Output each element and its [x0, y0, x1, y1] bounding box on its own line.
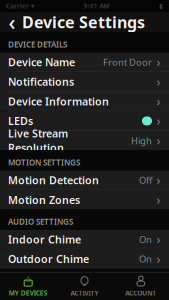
staticText: High	[131, 134, 152, 147]
staticText: △	[26, 274, 31, 282]
staticText: ACCOUNT	[125, 289, 156, 297]
staticText: ‹	[8, 8, 15, 36]
staticText: Device Information	[8, 94, 109, 108]
staticText: ›	[156, 172, 160, 188]
button[interactable]: Back	[6, 12, 18, 32]
staticText: Device Settings	[22, 11, 145, 33]
button[interactable]: LEDs	[0, 111, 169, 131]
staticText: ›	[156, 113, 160, 129]
staticText: ▮	[159, 2, 163, 10]
button[interactable]: Device Name	[0, 53, 169, 72]
staticText: MY DEVICES	[9, 289, 48, 297]
staticText: Outdoor Chime	[8, 252, 89, 266]
button[interactable]: Outdoor Chime	[0, 249, 169, 268]
button[interactable]: Live Stream Resolution	[0, 131, 169, 150]
button[interactable]: Motion Zones	[0, 190, 169, 209]
staticText: ›	[156, 93, 160, 109]
staticText: ›	[156, 54, 160, 70]
staticText: Notifications	[8, 75, 74, 89]
staticText: Motion Zones	[8, 193, 80, 207]
button[interactable]: Device Information	[0, 92, 169, 111]
staticText: ›	[156, 231, 160, 247]
staticText: 9:41 AM	[83, 2, 109, 10]
staticText: ›	[156, 74, 160, 90]
staticText: ▾	[31, 2, 34, 10]
staticText: MOTION SETTINGS	[8, 157, 80, 168]
staticText: On	[139, 253, 152, 265]
staticText: AUDIO SETTINGS	[8, 216, 73, 227]
button[interactable]: ACCOUNT	[113, 273, 169, 300]
staticText: DEVICE DETAILS	[8, 39, 67, 50]
staticText: On	[139, 233, 152, 246]
staticText: Device Name	[8, 55, 75, 69]
button[interactable]: ACTIVITY	[56, 273, 113, 300]
staticText: Off	[139, 174, 152, 186]
staticText: ACTIVITY	[70, 289, 98, 297]
staticText: ›	[156, 251, 160, 267]
button[interactable]: Indoor Chime	[0, 230, 169, 249]
staticText: Indoor Chime	[8, 232, 81, 246]
staticText: ›	[156, 133, 160, 148]
button[interactable]: MY DEVICES	[0, 273, 56, 300]
button[interactable]: Notifications	[0, 72, 169, 92]
staticText: Motion Detection	[8, 173, 99, 187]
staticText: Front Door	[103, 56, 152, 68]
staticText: Carrier	[6, 2, 29, 10]
button[interactable]: Motion Detection	[0, 171, 169, 190]
staticText: Live Stream Resolution	[8, 126, 68, 155]
staticText: ›	[156, 192, 160, 208]
staticText: LEDs	[8, 114, 33, 128]
